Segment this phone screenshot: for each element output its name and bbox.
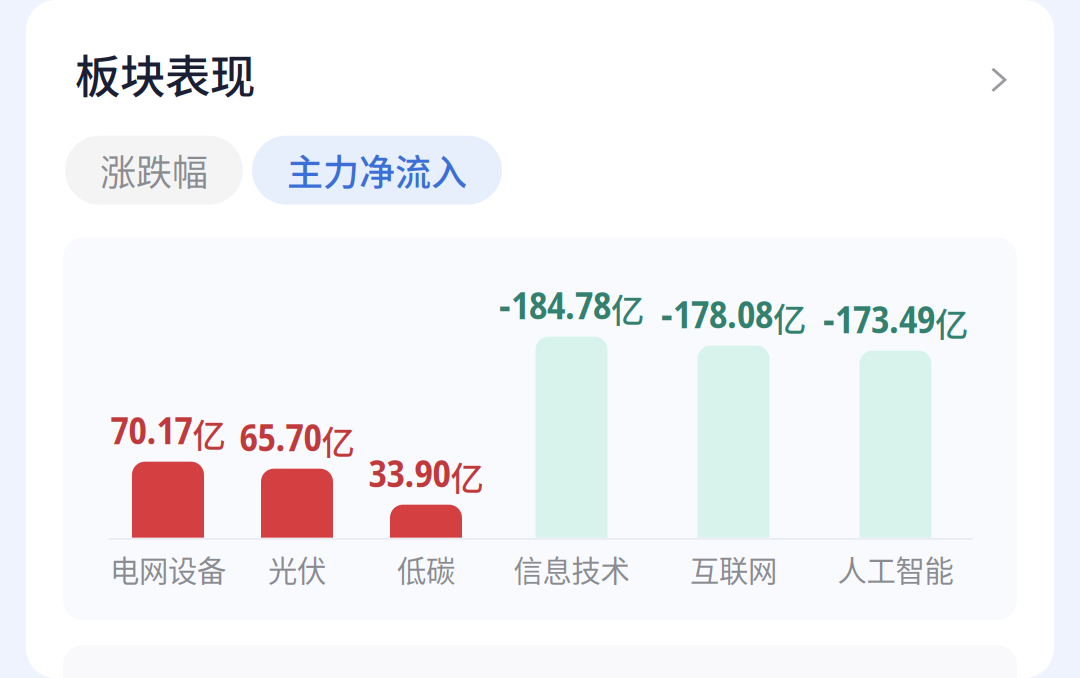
staticText: 低碳 [397, 548, 455, 590]
staticText: 互联网 [690, 548, 777, 590]
staticText: 涨跌幅 [100, 144, 208, 196]
staticText: 光伏 [268, 548, 326, 590]
staticText: -178.08亿 [661, 289, 806, 341]
staticText: 信息技术 [513, 548, 629, 590]
staticText: 人工智能 [837, 548, 953, 590]
staticText: 电网设备 [110, 548, 226, 590]
button[interactable]: 主力净流入 [252, 136, 502, 205]
staticText: -173.49亿 [823, 294, 968, 346]
staticText: 主力净流入 [287, 144, 467, 196]
staticText: 33.90亿 [368, 448, 483, 500]
staticText: -184.78亿 [499, 280, 644, 332]
button[interactable]: More [991, 67, 1007, 92]
staticText: 65.70亿 [239, 412, 354, 464]
staticText: 板块表现 [75, 41, 255, 107]
staticText: 70.17亿 [110, 405, 225, 457]
button[interactable]: 涨跌幅 [65, 136, 243, 205]
